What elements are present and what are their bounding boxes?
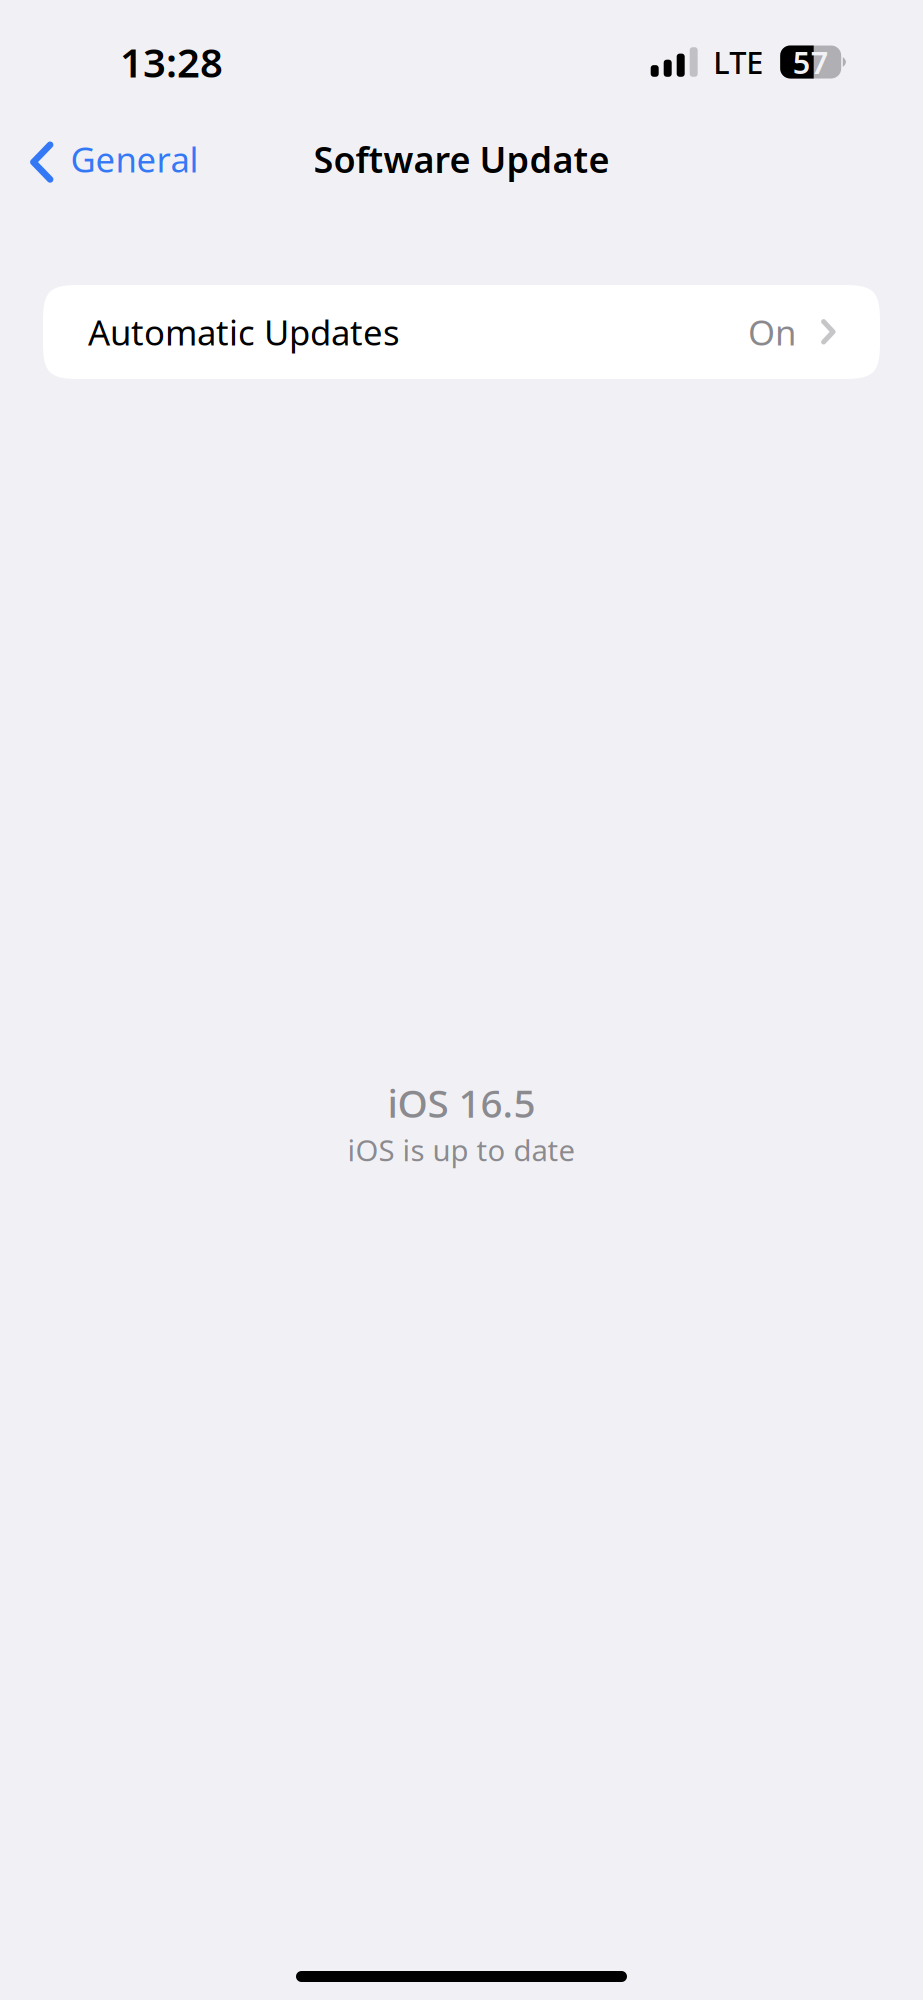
staticText: Software Update bbox=[313, 135, 609, 183]
staticText: General bbox=[70, 136, 198, 182]
staticText: On bbox=[748, 309, 796, 355]
staticText: LTE bbox=[713, 42, 763, 82]
staticText: iOS 16.5 bbox=[387, 1077, 535, 1128]
staticText: 57 bbox=[793, 42, 829, 82]
staticText: iOS is up to date bbox=[347, 1130, 575, 1169]
staticText: Automatic Updates bbox=[88, 309, 400, 355]
button[interactable]: Automatic Updates bbox=[43, 285, 880, 379]
button[interactable]: Back to General bbox=[0, 119, 214, 199]
staticText: 13:28 bbox=[120, 35, 223, 88]
